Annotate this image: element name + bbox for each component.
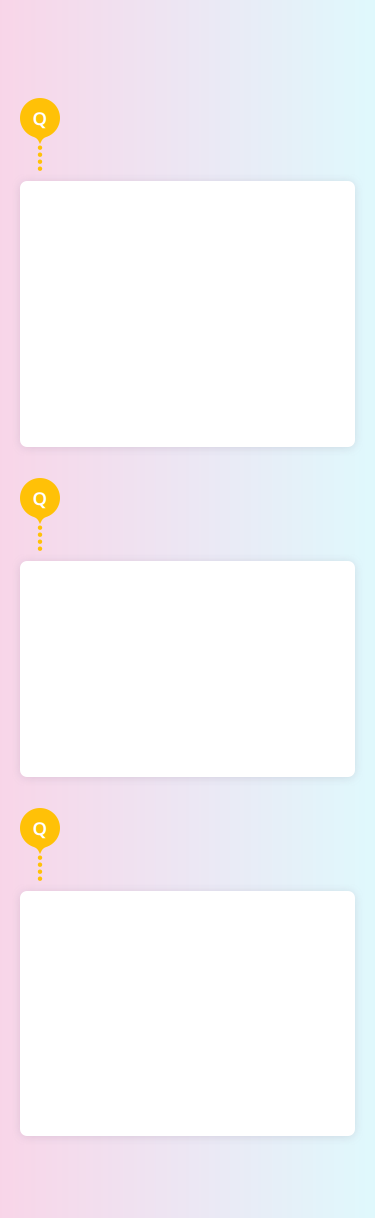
button[interactable]: Question bbox=[20, 808, 60, 881]
button[interactable]: Question bbox=[20, 98, 60, 171]
staticText: Q bbox=[32, 106, 47, 130]
staticText: Q bbox=[32, 816, 47, 840]
button[interactable]: Question bbox=[20, 478, 60, 551]
staticText: Q bbox=[32, 486, 47, 510]
